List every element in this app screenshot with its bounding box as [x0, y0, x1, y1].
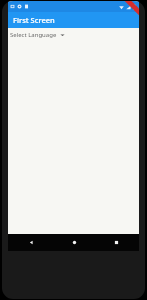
button[interactable]: Select Language — [8, 28, 139, 41]
other: Open language dropdown — [60, 33, 65, 37]
staticText: Select Language — [10, 31, 57, 39]
button[interactable]: Back — [22, 234, 40, 251]
button[interactable]: Home — [65, 234, 83, 251]
staticText: First Screen — [13, 15, 55, 25]
button[interactable]: Recent apps — [107, 234, 125, 251]
